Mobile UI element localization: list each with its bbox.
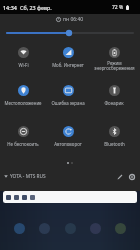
staticText: Сб, 23 февр. — [20, 4, 52, 11]
button[interactable]: Settings — [126, 171, 137, 182]
button[interactable]: Моб. Интернет — [46, 44, 90, 74]
staticText: Автоповорот — [54, 141, 82, 147]
staticText: Фонарик — [104, 100, 124, 106]
button[interactable]: Bluetooth — [92, 123, 136, 153]
button[interactable]: App — [39, 223, 50, 234]
button[interactable]: App — [14, 223, 25, 234]
button[interactable]: Brightness — [0, 27, 140, 39]
staticText: Wi-Fi — [18, 62, 29, 68]
staticText: пн 06:40 — [63, 16, 84, 23]
button[interactable]: Не беспокоить — [1, 123, 45, 153]
staticText: Ошибка экрана — [51, 100, 85, 106]
staticText: Bluetooth — [104, 141, 125, 147]
button[interactable]: Edit — [114, 171, 125, 182]
staticText: Не беспокоить — [7, 141, 39, 147]
button[interactable]: Ошибка экрана — [46, 82, 90, 112]
button[interactable]: App — [115, 223, 126, 234]
button[interactable]: Местоположение — [1, 82, 45, 112]
button[interactable] — [3, 191, 137, 203]
staticText: Режим энергосбережения — [94, 60, 135, 71]
staticText: Местоположение — [4, 100, 42, 106]
button[interactable]: Фонарик — [92, 82, 136, 112]
button[interactable]: Wi-Fi — [1, 44, 45, 74]
button[interactable]: App — [65, 223, 76, 234]
button[interactable]: Режим энергосбережения — [92, 44, 136, 74]
button[interactable]: Автоповорот — [46, 123, 90, 153]
staticText: YOTA - MTS RUS — [10, 173, 46, 180]
staticText: 72 % — [112, 4, 124, 11]
staticText: Моб. Интернет — [52, 62, 84, 68]
staticText: 14:34 — [3, 4, 17, 11]
button[interactable]: App — [90, 223, 101, 234]
